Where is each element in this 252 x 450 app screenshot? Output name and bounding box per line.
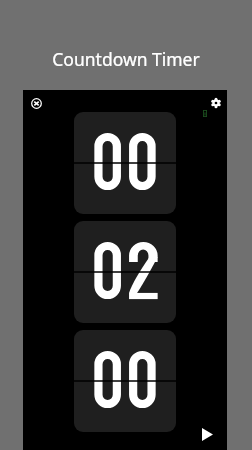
button[interactable]: Settings (205, 92, 227, 114)
staticText: Countdown Timer (0, 47, 252, 71)
button[interactable] (74, 221, 176, 323)
button[interactable]: Start (195, 422, 220, 447)
button[interactable] (74, 112, 176, 214)
button[interactable] (74, 330, 176, 432)
button[interactable]: Close (25, 92, 47, 114)
